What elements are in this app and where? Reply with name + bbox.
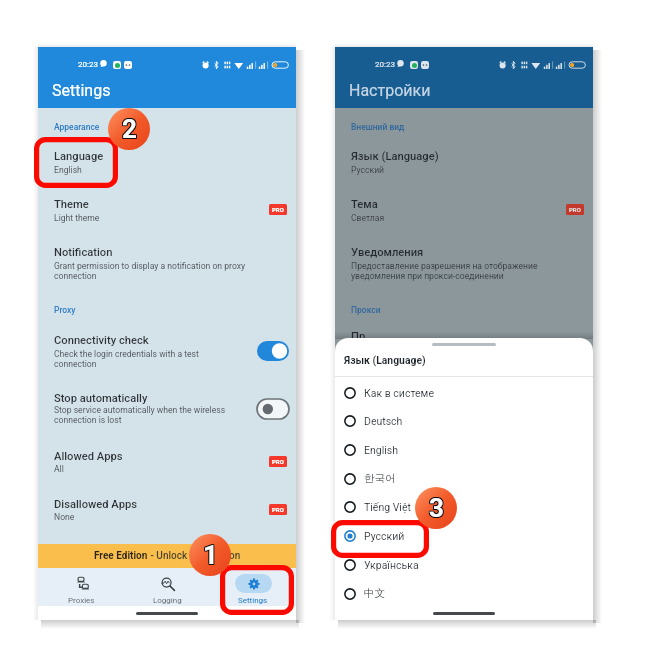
staticText: Українська <box>364 559 419 571</box>
staticText: Как в системе <box>364 387 434 399</box>
staticText: connection <box>54 271 97 281</box>
staticText: 1 <box>204 541 219 571</box>
staticText: Theme <box>54 198 89 211</box>
button[interactable]: Logging <box>124 568 210 606</box>
staticText: Stop service automatically when the wire… <box>54 405 226 415</box>
staticText: Appearance <box>54 122 100 132</box>
button[interactable] <box>38 143 296 181</box>
button[interactable]: Pro feature <box>269 456 287 467</box>
button[interactable]: Free Edition <box>38 544 296 568</box>
staticText: 中文 <box>364 587 385 600</box>
staticText: PRO <box>569 206 581 213</box>
staticText: Proxy <box>54 305 76 315</box>
staticText: Уведомления <box>351 246 424 259</box>
staticText: 3 <box>428 492 443 522</box>
staticText: 1 <box>203 540 218 570</box>
button[interactable]: Русский <box>335 521 593 550</box>
staticText: Check the login credentials with a test <box>54 349 199 359</box>
staticText: 3 <box>429 492 444 522</box>
button[interactable]: Українська <box>335 550 593 579</box>
staticText: Tiếng Việt <box>364 501 411 513</box>
staticText: Язык (Language) <box>351 150 439 163</box>
staticText: 2 <box>122 114 137 144</box>
staticText: Предоставление разрешения на отображение <box>351 261 538 271</box>
staticText: Светлая <box>351 213 385 223</box>
button[interactable]: Settings <box>210 568 296 606</box>
staticText: 한국어 <box>364 472 396 485</box>
staticText: 1 <box>202 540 217 570</box>
staticText: 3 <box>429 494 444 524</box>
staticText: 1 <box>203 541 218 571</box>
staticText: 3 <box>428 494 443 524</box>
staticText: Deutsch <box>364 415 403 427</box>
staticText: Light theme <box>54 213 100 223</box>
button[interactable]: 中文 <box>335 579 593 608</box>
button[interactable] <box>38 240 296 288</box>
staticText: Русский <box>364 530 405 542</box>
staticText: 2 <box>121 113 136 143</box>
staticText: Settings <box>52 81 111 100</box>
staticText: 2 <box>123 114 138 144</box>
button[interactable]: English <box>335 435 593 464</box>
staticText: 20:23 <box>78 60 98 69</box>
staticText: connection <box>54 359 97 369</box>
staticText: 1 <box>202 541 217 571</box>
staticText: 1 <box>202 539 217 569</box>
staticText: None <box>54 512 75 522</box>
staticText: Пр <box>351 330 366 343</box>
staticText: 3 <box>430 492 445 522</box>
staticText: 3 <box>429 493 444 523</box>
staticText: 3 <box>430 494 445 524</box>
staticText: 1 <box>204 539 219 569</box>
button[interactable]: Pro feature <box>269 204 287 215</box>
staticText: 2 <box>123 115 138 145</box>
staticText: Proxies <box>68 596 95 605</box>
staticText: уведомления при прокси-соединении <box>351 271 504 281</box>
staticText: Grant permission to display a notificati… <box>54 261 246 271</box>
staticText: Прокси <box>351 305 381 315</box>
staticText: Тема <box>351 198 378 211</box>
staticText: Logging <box>153 596 182 605</box>
staticText: 2 <box>121 115 136 145</box>
button[interactable]: Pro feature <box>269 504 287 515</box>
staticText: All <box>54 464 64 474</box>
staticText: 2 <box>122 115 137 145</box>
staticText: Настройки <box>349 81 431 100</box>
staticText: 3 <box>430 493 445 523</box>
staticText: PRO <box>272 206 284 213</box>
staticText: Внешний вид <box>351 122 405 132</box>
button[interactable]: Tiếng Việt <box>335 492 593 521</box>
staticText: 2 <box>123 113 138 143</box>
staticText: Disallowed Apps <box>54 498 138 511</box>
button[interactable] <box>38 444 296 482</box>
staticText: PRO <box>272 506 284 513</box>
staticText: English <box>364 444 398 456</box>
staticText: Русский <box>351 165 385 175</box>
staticText: connection is lost <box>54 415 122 425</box>
staticText: Settings <box>238 596 268 605</box>
staticText: - Unlock Pro version <box>148 550 241 562</box>
staticText: PRO <box>272 458 284 465</box>
staticText: Connectivity check <box>54 334 149 347</box>
button[interactable]: Switch off <box>257 399 289 419</box>
button[interactable]: Deutsch <box>335 406 593 435</box>
staticText: Stop automatically <box>54 392 148 405</box>
staticText: 1 <box>204 540 219 570</box>
button[interactable]: Switch on <box>257 341 289 361</box>
staticText: English <box>54 165 82 175</box>
button[interactable]: Как в системе <box>335 378 593 407</box>
staticText: 2 <box>121 114 136 144</box>
staticText: 3 <box>428 493 443 523</box>
button[interactable]: 한국어 <box>335 464 593 493</box>
button[interactable] <box>38 192 296 230</box>
staticText: 1 <box>203 539 218 569</box>
staticText: Allowed Apps <box>54 450 123 463</box>
staticText: 2 <box>122 113 137 143</box>
staticText: 20:23 <box>375 60 395 69</box>
button[interactable] <box>38 492 296 530</box>
staticText: Язык (Language) <box>344 354 426 366</box>
button[interactable]: Proxies <box>38 568 124 606</box>
staticText: Notification <box>54 246 113 259</box>
staticText: Language <box>54 150 104 163</box>
staticText: Free Edition <box>94 550 148 562</box>
